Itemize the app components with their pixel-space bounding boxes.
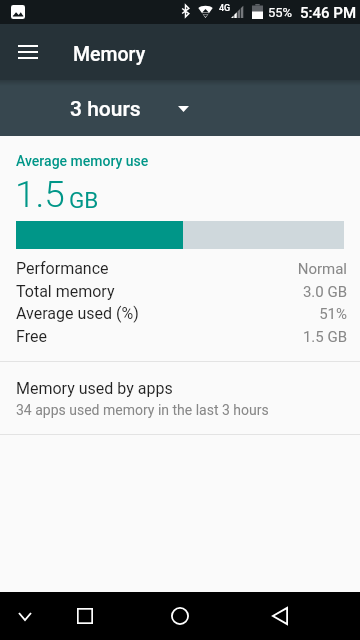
staticText: 55% bbox=[268, 5, 293, 20]
staticText: Performance bbox=[16, 259, 109, 278]
staticText: Average memory use bbox=[16, 153, 149, 169]
staticText: Memory used by apps bbox=[16, 379, 173, 398]
staticText: Memory bbox=[73, 43, 146, 66]
button[interactable]: Memory used by apps bbox=[0, 362, 360, 434]
staticText: Average used (%) bbox=[16, 304, 139, 323]
staticText: 3.0 GB bbox=[0, 283, 347, 301]
staticText: 4G bbox=[219, 3, 231, 14]
button[interactable]: Home bbox=[150, 592, 210, 640]
button[interactable]: Hide keyboard bbox=[1, 592, 49, 640]
button[interactable]: Recent apps bbox=[55, 592, 115, 640]
staticText: 34 apps used memory in the last 3 hours bbox=[16, 402, 269, 418]
button[interactable]: Open navigation drawer bbox=[8, 32, 48, 72]
button[interactable]: 3 hours bbox=[58, 87, 201, 132]
staticText: 3 hours bbox=[70, 97, 141, 122]
staticText: Normal bbox=[0, 260, 347, 278]
staticText: 1.5 GB bbox=[0, 328, 347, 346]
staticText: GB bbox=[69, 187, 99, 213]
staticText: 51% bbox=[0, 305, 347, 323]
staticText: Free bbox=[16, 327, 47, 346]
button[interactable]: Back bbox=[250, 592, 310, 640]
staticText: 5:46 PM bbox=[300, 4, 357, 22]
staticText: Total memory bbox=[16, 282, 115, 301]
staticText: 1.5 bbox=[15, 173, 65, 216]
